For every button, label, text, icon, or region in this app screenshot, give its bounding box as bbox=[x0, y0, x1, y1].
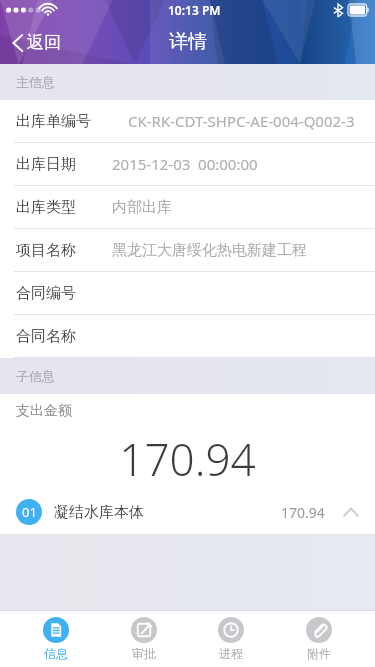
button[interactable]: 审批 bbox=[113, 613, 175, 665]
staticText: 主信息 bbox=[16, 74, 55, 90]
staticText: 黑龙江大唐绥化热电新建工程 bbox=[112, 241, 307, 260]
button[interactable]: 返回 bbox=[0, 26, 71, 59]
staticText: 合同名称 bbox=[16, 327, 112, 346]
staticText: 出库单编号 bbox=[16, 112, 128, 131]
staticText: 附件 bbox=[307, 646, 331, 661]
staticText: 内部出库 bbox=[112, 198, 172, 217]
staticText: 项目名称 bbox=[16, 241, 112, 260]
staticText: 信息 bbox=[44, 646, 68, 661]
button[interactable]: 合同名称 bbox=[0, 315, 375, 358]
button[interactable]: 项目名称 bbox=[0, 229, 375, 272]
staticText: 审批 bbox=[132, 646, 156, 661]
staticText: 进程 bbox=[219, 646, 243, 661]
staticText: 2015-12-03 00:00:00 bbox=[112, 154, 258, 174]
button[interactable]: 附件 bbox=[288, 613, 350, 665]
staticText: 出库类型 bbox=[16, 198, 112, 217]
button[interactable]: 01 bbox=[0, 490, 375, 535]
button[interactable]: 信息 bbox=[25, 613, 87, 665]
staticText: 返回 bbox=[27, 32, 61, 53]
staticText: 凝结水库本体 bbox=[54, 503, 281, 522]
staticText: 支出金额 bbox=[16, 402, 72, 420]
staticText: 10:13 PM bbox=[168, 2, 221, 18]
staticText: 01 bbox=[22, 503, 37, 521]
button[interactable]: 合同编号 bbox=[0, 272, 375, 315]
staticText: 详情 bbox=[169, 30, 207, 54]
button[interactable]: 出库类型 bbox=[0, 186, 375, 229]
staticText: CK-RK-CDT-SHPC-AE-004-Q002-3 bbox=[128, 111, 355, 131]
staticText: 子信息 bbox=[16, 368, 55, 384]
button[interactable]: 出库单编号 bbox=[0, 100, 375, 143]
button[interactable]: 进程 bbox=[200, 613, 262, 665]
staticText: 170.94 bbox=[119, 429, 256, 489]
button[interactable]: 出库日期 bbox=[0, 143, 375, 186]
staticText: 合同编号 bbox=[16, 284, 112, 303]
staticText: 170.94 bbox=[281, 503, 325, 522]
staticText: 出库日期 bbox=[16, 155, 112, 174]
